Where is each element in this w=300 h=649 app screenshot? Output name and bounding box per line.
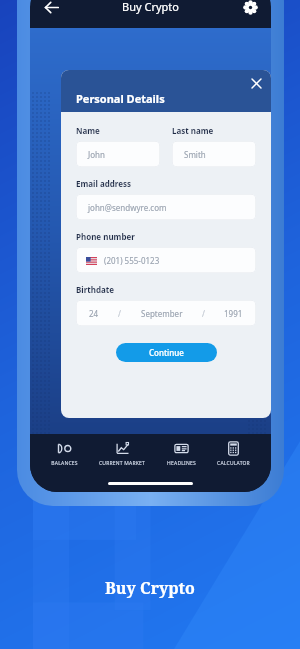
staticText: Email address (76, 178, 132, 189)
button[interactable]: CURRENT MARKET (98, 441, 146, 467)
staticText: John (88, 149, 105, 160)
staticText: 24 (89, 308, 99, 319)
button[interactable]: Settings (235, 0, 265, 22)
button[interactable]: Smith (172, 141, 256, 167)
staticText: HEADLINES (167, 460, 196, 467)
staticText: CURRENT MARKET (99, 460, 145, 467)
button[interactable]: Continue (116, 343, 217, 362)
staticText: Buy Crypto (0, 577, 300, 599)
staticText: Continue (149, 347, 184, 358)
staticText: Phone number (76, 231, 135, 242)
button[interactable]: John (76, 141, 160, 167)
staticText: Birthdate (76, 284, 115, 295)
staticText: Smith (184, 149, 206, 160)
button[interactable]: HEADLINES (166, 441, 197, 467)
staticText: (201) 555-0123 (104, 255, 160, 266)
staticText: Buy Crypto (122, 0, 179, 14)
button[interactable]: Back (36, 0, 66, 22)
button[interactable]: (201) 555-0123 (76, 247, 256, 273)
staticText: / (202, 308, 205, 319)
staticText: john@sendwyre.com (88, 202, 167, 213)
staticText: BALANCES (51, 460, 78, 467)
staticText: Personal Details (76, 91, 165, 106)
staticText: Name (76, 125, 100, 136)
button[interactable]: 24 (76, 300, 256, 326)
staticText: 1991 (224, 308, 243, 319)
staticText: CALCULATOR (217, 460, 250, 467)
staticText: Last name (172, 125, 214, 136)
button[interactable]: john@sendwyre.com (76, 194, 256, 220)
button[interactable]: BALANCES (50, 441, 79, 467)
button[interactable]: Close (245, 72, 267, 94)
staticText: September (141, 308, 183, 319)
staticText: / (118, 308, 121, 319)
button[interactable]: CALCULATOR (216, 441, 251, 467)
